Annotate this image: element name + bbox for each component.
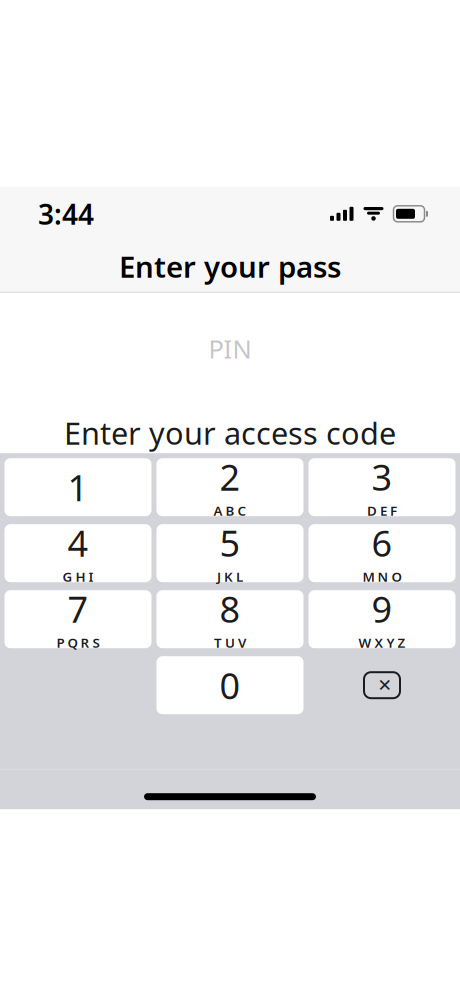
staticText: 9	[371, 585, 392, 633]
staticText: 3:44	[38, 195, 94, 232]
staticText: ✕	[377, 675, 392, 695]
staticText: D E F	[367, 502, 397, 519]
button[interactable]: 9	[308, 590, 455, 648]
button[interactable]: 5	[156, 524, 303, 582]
button[interactable]: 4	[4, 524, 151, 582]
staticText: J K L	[217, 568, 243, 585]
staticText: 7	[67, 585, 88, 633]
staticText: T U V	[214, 634, 246, 651]
button[interactable]: 1	[4, 458, 151, 516]
staticText: 3	[371, 453, 392, 501]
staticText: P Q R S	[56, 634, 99, 651]
staticText: PIN	[208, 332, 251, 365]
button[interactable]: 8	[156, 590, 303, 648]
button[interactable]: Delete	[308, 656, 455, 714]
staticText: 6	[371, 519, 392, 567]
staticText: 8	[219, 585, 240, 633]
staticText: 1	[67, 463, 88, 511]
staticText: Enter your access code	[64, 412, 396, 453]
button[interactable]: 7	[4, 590, 151, 648]
staticText: M N O	[362, 568, 401, 585]
staticText: G H I	[62, 568, 93, 585]
button[interactable]: 0	[156, 656, 303, 714]
staticText: 2	[219, 453, 240, 501]
staticText: Enter your pass	[119, 247, 341, 286]
button[interactable]: 3	[308, 458, 455, 516]
staticText: 5	[219, 519, 240, 567]
button[interactable]: 2	[156, 458, 303, 516]
staticText: 4	[67, 519, 88, 567]
staticText: W X Y Z	[358, 634, 405, 651]
button[interactable]: 6	[308, 524, 455, 582]
staticText: 0	[219, 661, 240, 709]
staticText: A B C	[213, 502, 246, 519]
